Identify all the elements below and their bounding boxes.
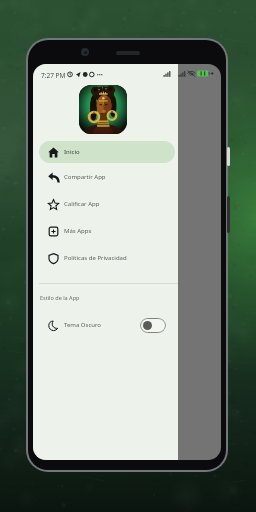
button[interactable]: Inicio (33, 139, 178, 165)
staticText: Políticas de Privacidad (64, 254, 127, 262)
staticText: Inicio (64, 148, 80, 156)
staticText: 7:27 PM (41, 71, 66, 80)
staticText: Tema Oscuro (64, 321, 101, 329)
button[interactable]: Calificar App (33, 191, 178, 217)
button[interactable]: Más Apps (33, 218, 178, 244)
button[interactable] (140, 318, 166, 333)
button[interactable]: Tema Oscuro (33, 312, 178, 338)
button[interactable]: Políticas de Privacidad (33, 245, 178, 271)
staticText: Calificar App (64, 200, 100, 208)
button[interactable]: Compartir App (33, 164, 178, 190)
staticText: Estilo de la App (40, 294, 80, 301)
staticText: Más Apps (64, 227, 92, 235)
staticText: Compartir App (64, 173, 106, 181)
